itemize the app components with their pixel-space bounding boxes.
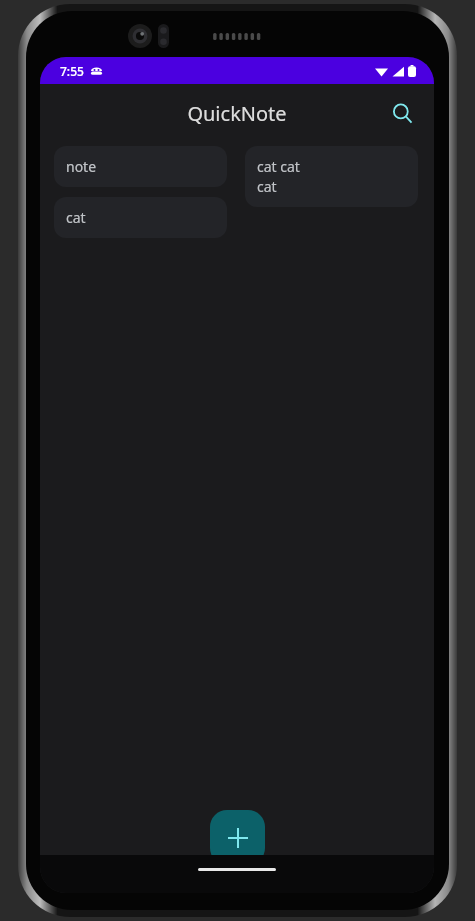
button[interactable]: cat [54,197,227,238]
staticText: cat [257,177,277,196]
button[interactable]: Search [378,89,426,137]
button[interactable]: cat cat [245,146,418,207]
button[interactable]: note [54,146,227,187]
button[interactable]: Add note [210,810,265,865]
staticText: QuickNote [40,100,434,127]
staticText: cat cat [257,157,300,176]
staticText: cat [66,208,86,227]
staticText: 7:55 [60,63,84,79]
staticText: note [66,157,97,176]
